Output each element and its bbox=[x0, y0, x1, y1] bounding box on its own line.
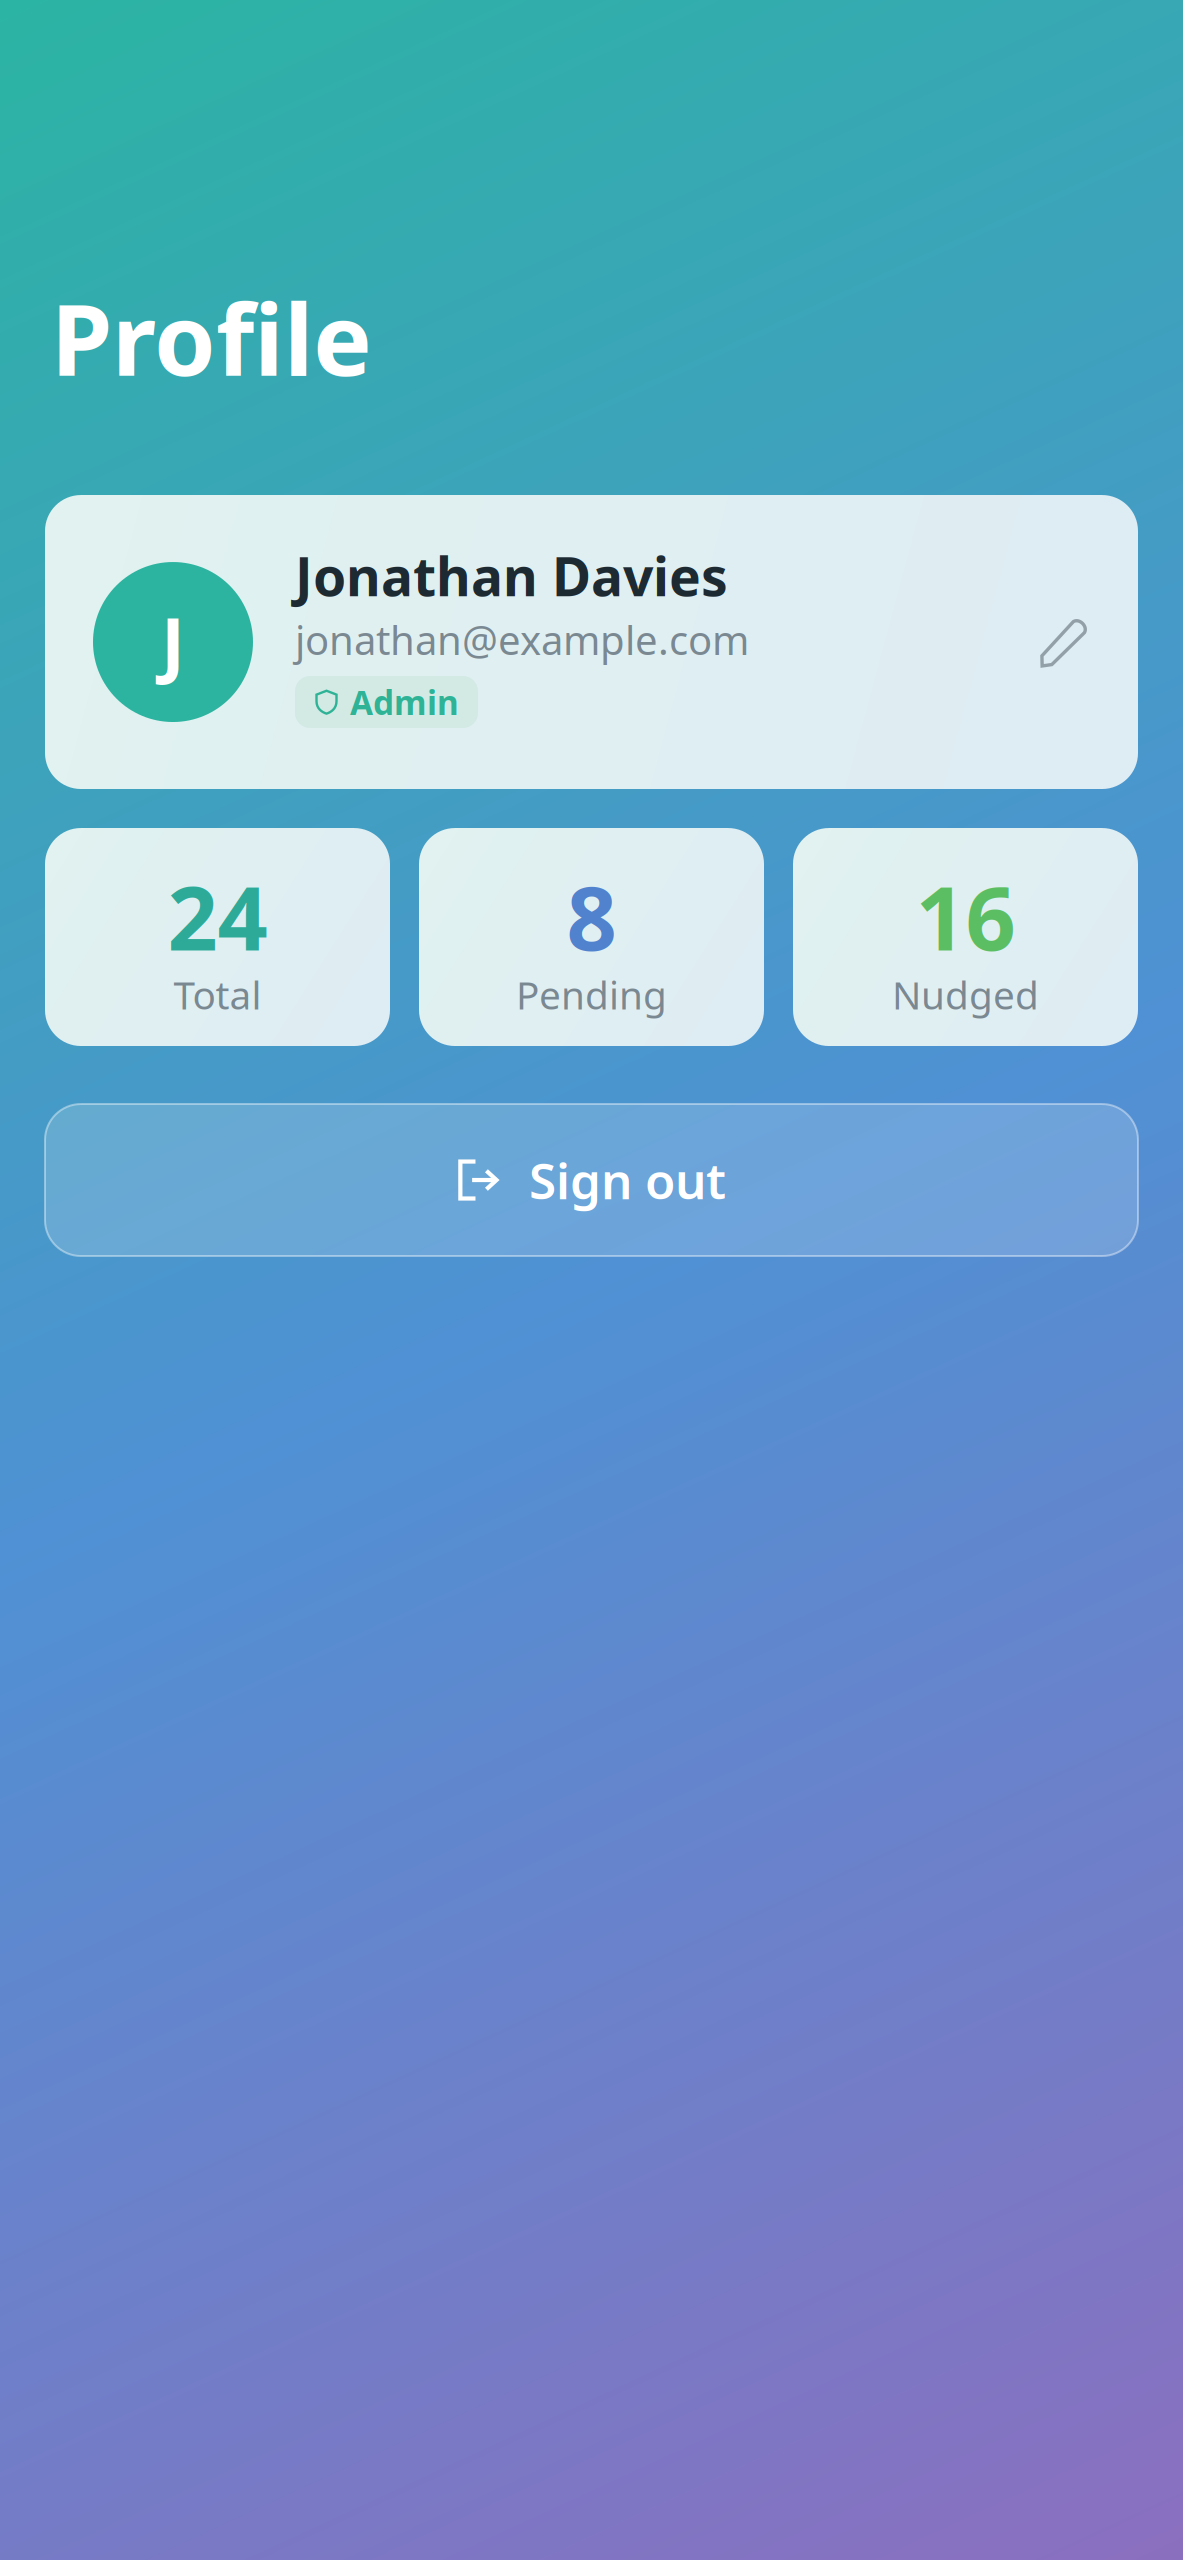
staticText: 8 bbox=[566, 858, 616, 975]
staticText: jonathan@example.com bbox=[295, 613, 749, 666]
staticText: Sign out bbox=[529, 1147, 726, 1213]
staticText: Nudged bbox=[892, 969, 1039, 1020]
staticText: 16 bbox=[915, 858, 1015, 975]
button[interactable]: 24 bbox=[45, 828, 390, 1046]
button[interactable]: 16 bbox=[793, 828, 1138, 1046]
staticText: Total bbox=[173, 969, 261, 1020]
button[interactable]: J bbox=[93, 495, 1029, 789]
button[interactable]: Edit profile bbox=[1029, 607, 1099, 677]
staticText: J bbox=[161, 594, 185, 690]
staticText: Jonathan Davies bbox=[295, 540, 728, 611]
staticText: Admin bbox=[350, 680, 459, 724]
button[interactable]: Sign out bbox=[45, 1104, 1138, 1256]
button[interactable]: 8 bbox=[419, 828, 764, 1046]
staticText: Pending bbox=[516, 969, 667, 1020]
staticText: 24 bbox=[167, 858, 267, 975]
staticText: Profile bbox=[51, 272, 372, 403]
